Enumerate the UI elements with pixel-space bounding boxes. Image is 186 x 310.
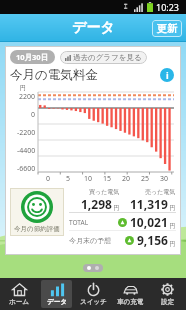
staticText: 過去のグラフを見る: [73, 53, 142, 62]
staticText: 買った電気: [89, 188, 120, 196]
button[interactable]: 過去のグラフを見る: [60, 51, 147, 64]
staticText: 車の充電: [117, 298, 144, 306]
staticText: 設定: [161, 298, 174, 306]
staticText: ホーム: [9, 298, 29, 306]
staticText: 売った電気: [145, 188, 176, 196]
button[interactable]: 車の充電: [115, 280, 146, 308]
staticText: i: [166, 69, 169, 81]
button[interactable]: Information: [160, 68, 174, 82]
staticText: TOTAL: [69, 218, 89, 227]
button[interactable]: ホーム: [3, 280, 35, 308]
button[interactable]: スイッチ: [78, 280, 109, 308]
staticText: 0: [31, 110, 36, 120]
staticText: 10,021: [130, 214, 168, 230]
staticText: 9,156: [137, 232, 168, 248]
staticText: 10: [84, 174, 93, 184]
staticText: 今月の電気料金: [10, 67, 98, 83]
staticText: 1,298: [81, 196, 112, 212]
staticText: 10月30日: [16, 52, 49, 62]
staticText: 今月末の予想: [69, 236, 112, 245]
button[interactable]: 更新: [152, 20, 182, 37]
staticText: 15: [103, 174, 112, 184]
staticText: -2200: [17, 128, 36, 138]
staticText: スイッチ: [80, 298, 107, 306]
staticText: -6600: [17, 164, 36, 174]
staticText: 2200: [19, 92, 36, 102]
button[interactable]: データ: [41, 280, 72, 308]
staticText: データ: [72, 19, 115, 37]
staticText: 今月の節約評価: [14, 225, 60, 233]
staticText: 円: [168, 222, 176, 230]
staticText: 円: [168, 204, 176, 212]
staticText: 25: [141, 174, 150, 184]
staticText: 20: [122, 174, 131, 184]
staticText: 30: [160, 174, 169, 184]
staticText: 更新: [157, 22, 177, 35]
staticText: 11,319: [130, 196, 168, 212]
staticText: 0: [46, 174, 51, 184]
staticText: 10:23: [156, 1, 180, 13]
staticText: 円: [168, 240, 176, 248]
button[interactable]: 10月30日: [10, 50, 55, 64]
staticText: -4400: [17, 146, 36, 156]
staticText: データ: [47, 298, 67, 306]
button[interactable]: 設定: [152, 280, 183, 308]
staticText: 円: [20, 84, 26, 92]
staticText: 円: [112, 204, 120, 212]
staticText: 5: [66, 174, 71, 184]
